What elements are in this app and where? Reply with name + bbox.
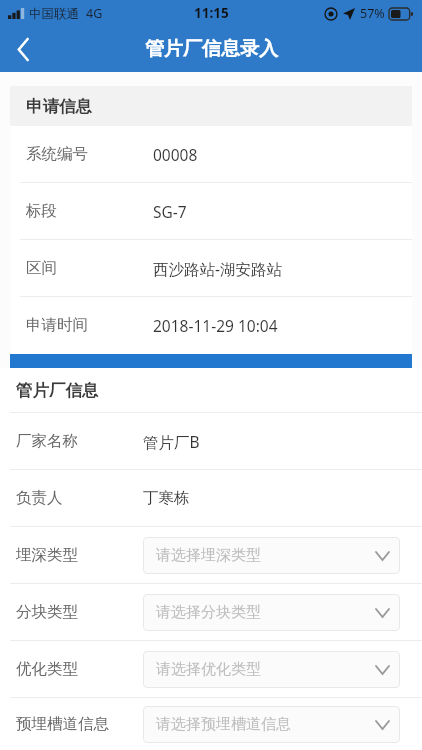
staticText: 申请时间 bbox=[26, 315, 88, 335]
staticText: 请选择分块类型 bbox=[156, 603, 261, 622]
staticText: 中国联通 bbox=[29, 6, 79, 22]
button[interactable]: 厂家名称 bbox=[0, 413, 422, 469]
button[interactable]: 优化类型 bbox=[0, 641, 422, 697]
button[interactable]: Back bbox=[0, 26, 46, 72]
button[interactable]: 分块类型 bbox=[0, 584, 422, 640]
staticText: SG-7 bbox=[153, 201, 187, 222]
button[interactable]: 预埋槽道信息 bbox=[0, 698, 422, 750]
staticText: 厂家名称 bbox=[16, 431, 78, 451]
staticText: 4G bbox=[86, 5, 103, 22]
staticText: 请选择埋深类型 bbox=[156, 546, 261, 565]
button[interactable]: 申请时间 bbox=[10, 297, 412, 353]
staticText: 预埋槽道信息 bbox=[16, 714, 109, 734]
staticText: 57% bbox=[360, 5, 385, 22]
button[interactable]: 区间 bbox=[10, 240, 412, 296]
staticText: 优化类型 bbox=[16, 659, 78, 679]
staticText: 管片厂信息 bbox=[16, 380, 99, 401]
staticText: 2018-11-29 10:04 bbox=[153, 315, 278, 336]
staticText: 西沙路站-湖安路站 bbox=[153, 258, 282, 279]
button[interactable]: 系统编号 bbox=[10, 126, 412, 182]
staticText: 管片厂B bbox=[143, 431, 200, 452]
staticText: 请选择优化类型 bbox=[156, 660, 261, 679]
staticText: 区间 bbox=[26, 258, 57, 278]
button[interactable]: 标段 bbox=[10, 183, 412, 239]
staticText: 00008 bbox=[153, 144, 198, 165]
staticText: 负责人 bbox=[16, 488, 63, 508]
staticText: 申请信息 bbox=[26, 96, 92, 117]
button[interactable]: 负责人 bbox=[0, 470, 422, 526]
staticText: 11:15 bbox=[194, 4, 229, 22]
staticText: 标段 bbox=[26, 201, 57, 221]
staticText: 管片厂信息录入 bbox=[145, 37, 278, 61]
staticText: 系统编号 bbox=[26, 144, 88, 164]
staticText: 请选择预埋槽道信息 bbox=[156, 715, 291, 734]
staticText: 埋深类型 bbox=[16, 545, 78, 565]
button[interactable]: 埋深类型 bbox=[0, 527, 422, 583]
staticText: 丁寒栋 bbox=[143, 488, 190, 508]
staticText: 分块类型 bbox=[16, 602, 78, 622]
